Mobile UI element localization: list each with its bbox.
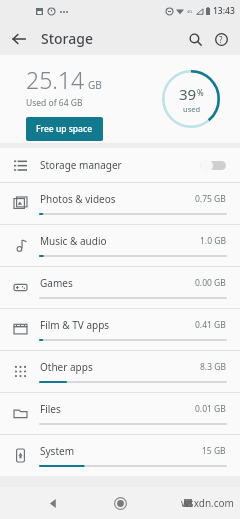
staticText: Storage (41, 29, 93, 48)
button[interactable]: Back (38, 488, 68, 518)
button[interactable]: Photos & videos (0, 183, 240, 224)
staticText: System (40, 444, 202, 458)
button[interactable]: Film & TV apps (0, 309, 240, 350)
staticText: 25.14 (26, 64, 85, 95)
staticText: 13:43 (213, 5, 235, 17)
staticText: Games (40, 276, 195, 290)
staticText: Files (40, 402, 195, 416)
staticText: Used of 64 GB (26, 97, 83, 109)
staticText: 4G (187, 9, 193, 14)
staticText: 0.75 GB (195, 193, 226, 205)
staticText: GB (88, 78, 102, 92)
button[interactable]: Other apps (0, 351, 240, 392)
staticText: Photos & videos (40, 192, 195, 206)
staticText: 0.00 GB (195, 277, 226, 289)
staticText: 0.01 GB (195, 403, 226, 415)
staticText: 8.3 GB (200, 361, 226, 373)
staticText: 1.0 GB (200, 235, 226, 247)
staticText: used (183, 104, 201, 114)
button[interactable]: Free up space (26, 117, 103, 141)
button[interactable]: Files (0, 393, 240, 434)
staticText: 15 GB (202, 445, 226, 457)
button[interactable]: Search (182, 26, 208, 52)
staticText: Music & audio (40, 234, 200, 248)
button[interactable]: Recents (173, 488, 203, 518)
staticText: 0.41 GB (195, 319, 226, 331)
staticText: wsxdn.com (181, 496, 234, 510)
staticText: Free up space (36, 123, 93, 135)
button[interactable]: Help (208, 26, 234, 52)
staticText: Storage manager (40, 158, 122, 172)
staticText: Film & TV apps (40, 318, 195, 332)
button[interactable]: Games (0, 267, 240, 308)
button[interactable]: Storage manager (0, 148, 240, 182)
staticText: Other apps (40, 360, 200, 374)
staticText: 39 (179, 84, 197, 104)
button[interactable]: Home (105, 488, 135, 518)
button[interactable]: System (0, 435, 240, 476)
button[interactable]: Back (5, 25, 33, 53)
staticText: % (197, 87, 204, 98)
button[interactable]: Music & audio (0, 225, 240, 266)
staticText: ? (219, 34, 223, 45)
